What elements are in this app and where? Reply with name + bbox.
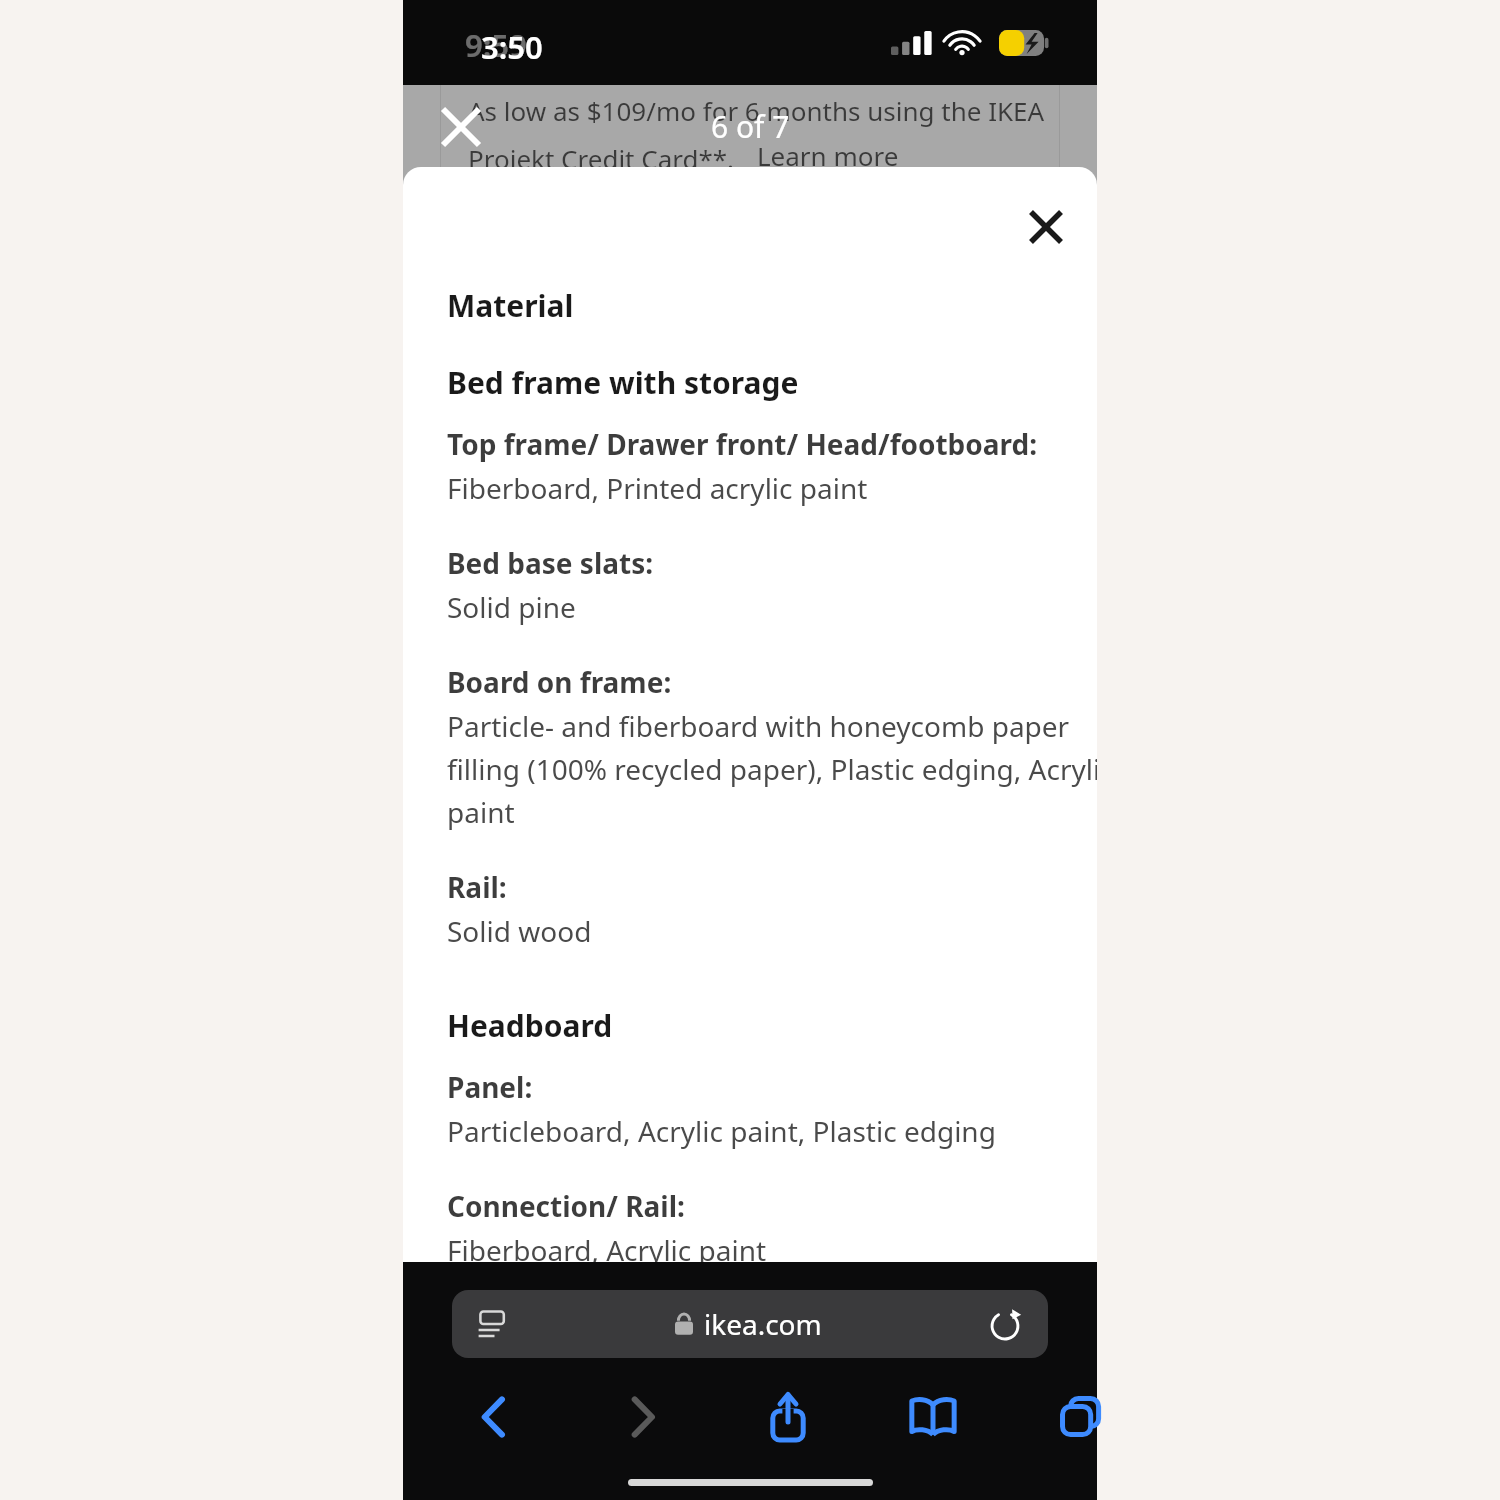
staticText: Bed frame with storage [447,362,799,403]
staticText: Connection/ Rail: [447,1187,685,1225]
button[interactable]: Address bar ikea.com [452,1290,1048,1358]
staticText: ikea.com [704,1305,822,1343]
button[interactable]: Forward [605,1382,681,1452]
staticText: 3:50 [481,26,543,68]
staticText: Top frame/ Drawer front/ Head/footboard: [447,425,1038,463]
staticText: Rail: [447,868,507,906]
button[interactable]: Close [1006,187,1086,267]
staticText: Fiberboard, Printed acrylic paint [447,469,868,507]
staticText: Particleboard, Acrylic paint, Plastic ed… [447,1112,996,1150]
staticText: Learn more [757,138,899,173]
staticText: Headboard [447,1005,613,1046]
staticText: Particle- and fiberboard with honeycomb … [447,707,1070,745]
staticText: Bed base slats: [447,544,654,582]
button[interactable]: Close gallery [428,94,494,160]
button[interactable]: Share [750,1382,826,1452]
staticText: 6 of 7 [711,106,790,147]
staticText: Solid pine [447,588,576,626]
staticText: 9:59 [465,24,527,66]
button[interactable]: Back [455,1382,531,1452]
staticText: Projekt Credit Card**. [468,141,735,176]
staticText: Material [447,285,574,326]
button[interactable]: Bookmarks [895,1382,971,1452]
staticText: Solid wood [447,912,592,950]
staticText: Panel: [447,1068,533,1106]
staticText: As low as $109/mo for 6 months using the… [468,93,1045,128]
staticText: paint [447,793,515,831]
staticText: Fiberboard, Acrylic paint [447,1231,767,1262]
staticText: filling (100% recycled paper), Plastic e… [447,750,1097,788]
button[interactable]: Tabs [1043,1382,1119,1452]
staticText: Board on frame: [447,663,672,701]
